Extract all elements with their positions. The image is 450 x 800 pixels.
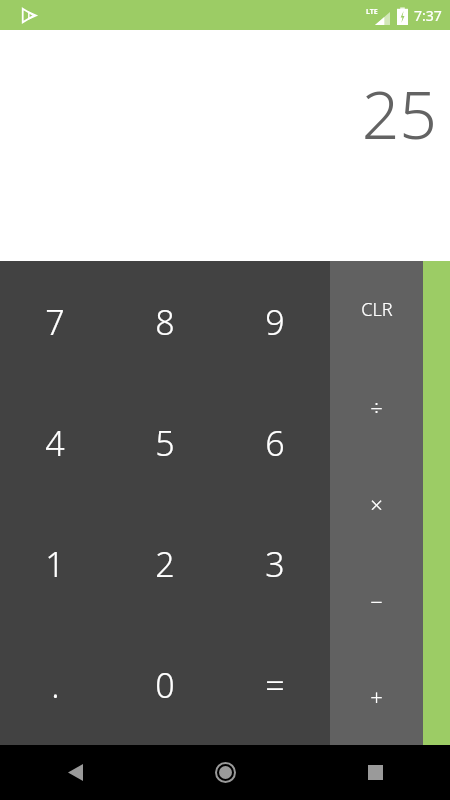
staticText: 1 <box>45 541 65 587</box>
staticText: 7:37 <box>414 6 442 25</box>
staticText: CLR <box>361 297 393 322</box>
staticText: 9 <box>265 299 285 345</box>
staticText: ÷ <box>370 392 383 422</box>
button[interactable]: Add <box>330 649 423 745</box>
button[interactable]: 5 <box>110 382 220 503</box>
staticText: = <box>265 662 285 708</box>
button[interactable]: 0 <box>110 624 220 745</box>
button[interactable]: Divide <box>330 358 423 455</box>
staticText: × <box>370 489 383 519</box>
staticText: 5 <box>155 420 175 466</box>
staticText: 7 <box>45 299 65 345</box>
staticText: . <box>51 662 60 708</box>
button[interactable]: 4 <box>0 382 110 503</box>
button[interactable]: 3 <box>220 503 330 624</box>
button[interactable]: 9 <box>220 261 330 382</box>
button[interactable]: Back <box>0 745 150 800</box>
button[interactable]: Subtract <box>330 552 423 649</box>
staticText: 3 <box>265 541 285 587</box>
button[interactable]: Multiply <box>330 455 423 552</box>
button[interactable]: 2 <box>110 503 220 624</box>
staticText: 25 <box>361 68 437 158</box>
button[interactable]: Clear <box>330 261 423 358</box>
button[interactable]: 1 <box>0 503 110 624</box>
staticText: 6 <box>265 420 285 466</box>
button[interactable]: Recents <box>300 745 450 800</box>
staticText: 8 <box>155 299 175 345</box>
button[interactable]: 8 <box>110 261 220 382</box>
staticText: + <box>370 682 383 712</box>
staticText: 4 <box>45 420 65 466</box>
staticText: 2 <box>155 541 175 587</box>
staticText: 0 <box>155 662 175 708</box>
staticText: − <box>370 586 383 616</box>
button[interactable]: Home <box>150 745 300 800</box>
staticText: LTE <box>366 7 378 17</box>
button[interactable]: . <box>0 624 110 745</box>
button[interactable]: 7 <box>0 261 110 382</box>
button[interactable]: 6 <box>220 382 330 503</box>
button[interactable]: = <box>220 624 330 745</box>
